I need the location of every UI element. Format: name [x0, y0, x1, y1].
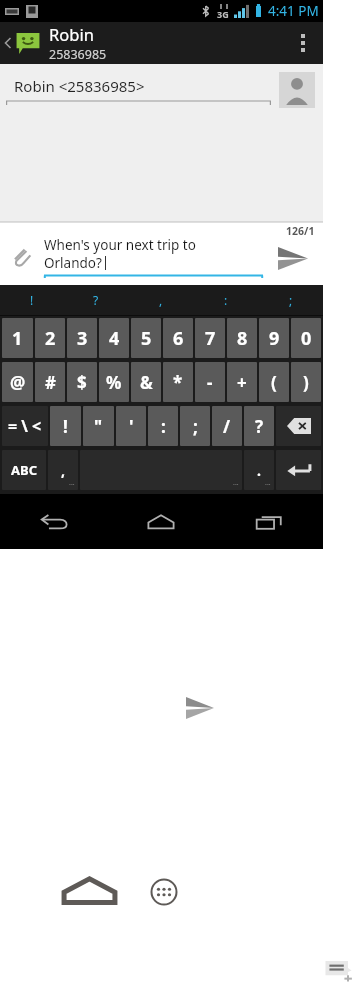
staticText: 6 [173, 326, 184, 351]
staticText: When's your next trip to [44, 236, 196, 254]
staticText: ABC [11, 461, 37, 479]
button[interactable]: * [163, 362, 193, 402]
button[interactable]: $ [67, 362, 97, 402]
staticText: 3G [217, 8, 229, 20]
button[interactable]: Contact photo [279, 72, 315, 108]
button[interactable]: = \ < [2, 406, 48, 446]
staticText: @ [10, 371, 26, 394]
button[interactable]: . [244, 450, 274, 490]
staticText: 5 [141, 326, 152, 351]
button[interactable]: Send [263, 236, 323, 280]
staticText: ; [289, 292, 293, 308]
staticText: / [223, 415, 231, 438]
staticText: * [173, 371, 183, 394]
staticText: = \ < [8, 415, 42, 437]
button[interactable]: % [99, 362, 129, 402]
button[interactable]: / [212, 406, 242, 446]
button[interactable]: 5 [131, 318, 161, 358]
button[interactable]: Home [107, 494, 215, 549]
other: New message [324, 958, 354, 982]
button[interactable]: Up [0, 22, 323, 64]
other: Delete [287, 418, 311, 434]
button[interactable]: Recent apps [215, 494, 323, 549]
staticText: 3 [77, 326, 88, 351]
button[interactable]: 6 [163, 318, 193, 358]
button[interactable]: ; [180, 406, 210, 446]
button[interactable]: + [227, 362, 257, 402]
button[interactable]: 0 [291, 318, 321, 358]
staticText: ( [271, 371, 277, 394]
staticText: 4 [109, 326, 120, 351]
staticText: ' [129, 415, 134, 438]
staticText: ... [233, 478, 239, 488]
staticText: ? [255, 415, 264, 438]
button[interactable]: Enter [276, 450, 321, 490]
staticText: - [207, 371, 213, 394]
staticText: 0 [301, 326, 312, 351]
staticText: Robin [49, 23, 94, 45]
button[interactable]: " [83, 406, 114, 446]
other: Home [63, 876, 116, 904]
staticText: , [61, 461, 65, 480]
staticText: 8 [237, 326, 248, 351]
staticText: 2 [45, 326, 56, 351]
other: Enter [286, 461, 312, 479]
staticText: Robin <25836985> [14, 76, 145, 96]
button[interactable]: ! [0, 285, 64, 315]
staticText: ! [63, 415, 68, 438]
staticText: Orlando? [44, 254, 102, 272]
staticText: % [106, 371, 122, 394]
staticText: 9 [269, 326, 280, 351]
button[interactable]: @ [2, 362, 33, 402]
button[interactable]: ) [291, 362, 321, 402]
button[interactable]: ? [64, 285, 128, 315]
staticText: . [257, 461, 261, 480]
staticText: ... [265, 478, 271, 488]
staticText: " [94, 415, 103, 438]
button[interactable]: 3 [67, 318, 97, 358]
staticText: 25836985 [49, 46, 107, 63]
staticText: ) [303, 371, 309, 394]
button[interactable]: Delete [276, 406, 321, 446]
staticText: , [159, 292, 163, 308]
staticText: 7 [205, 326, 216, 351]
staticText: : [224, 292, 228, 308]
staticText: : [161, 415, 166, 438]
button[interactable]: , [48, 450, 78, 490]
button[interactable]: ! [50, 406, 81, 446]
button[interactable]: 9 [259, 318, 289, 358]
button[interactable]: ? [244, 406, 274, 446]
button[interactable]: 4 [99, 318, 129, 358]
button[interactable]: Robin <25836985> [6, 72, 275, 100]
button[interactable]: ; [258, 285, 323, 315]
staticText: 4:41 PM [268, 2, 319, 20]
button[interactable]: 1 [2, 318, 33, 358]
button[interactable]: # [35, 362, 65, 402]
button[interactable]: Back [0, 494, 107, 549]
staticText: & [140, 371, 153, 394]
staticText: # [45, 371, 56, 394]
other: Apps [150, 878, 178, 906]
button[interactable]: ( [259, 362, 289, 402]
button[interactable]: 7 [195, 318, 225, 358]
button[interactable]: ABC [2, 450, 46, 490]
staticText: ... [69, 478, 75, 488]
staticText: ! [30, 292, 34, 308]
button[interactable]: ' [116, 406, 146, 446]
button[interactable]: 8 [227, 318, 257, 358]
staticText: ? [93, 292, 99, 308]
staticText: 1 [12, 326, 23, 351]
staticText: ; [193, 415, 198, 438]
button[interactable]: More options [283, 22, 323, 64]
button[interactable]: 2 [35, 318, 65, 358]
other: Up [3, 33, 13, 53]
button[interactable]: & [131, 362, 161, 402]
staticText: $ [77, 371, 87, 394]
button[interactable]: Attach [0, 236, 44, 280]
button[interactable]: - [195, 362, 225, 402]
button[interactable]: , [128, 285, 193, 315]
button[interactable]: : [193, 285, 258, 315]
button[interactable]: : [148, 406, 178, 446]
staticText: + [237, 371, 247, 394]
